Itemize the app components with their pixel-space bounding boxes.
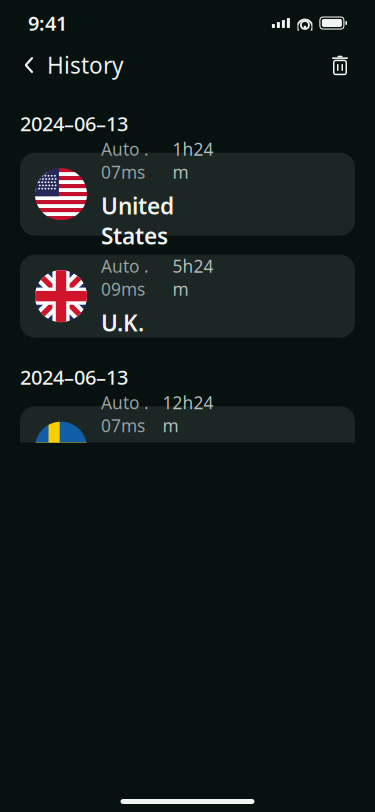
staticText: 1h24m [172, 137, 213, 183]
button[interactable]: Auto . 07ms [20, 153, 355, 236]
button[interactable]: Auto . 07ms [20, 406, 355, 489]
staticText: United States [101, 191, 174, 251]
staticText: 9:41 [28, 10, 67, 36]
button[interactable]: Auto . 09ms [20, 255, 355, 338]
button[interactable]: History [20, 44, 124, 86]
staticText: History [47, 50, 124, 80]
button[interactable]: Delete history [325, 48, 355, 82]
staticText: U.K. [101, 308, 144, 338]
staticText: Auto . 07ms [101, 137, 149, 183]
staticText: 12h24m [162, 391, 213, 437]
staticText: Auto . 09ms [101, 255, 149, 301]
staticText: Auto . 07ms [101, 391, 149, 437]
staticText: 2024–06–13 [20, 110, 128, 137]
staticText: 5h24m [172, 255, 213, 301]
staticText: 2024–06–13 [20, 364, 128, 390]
